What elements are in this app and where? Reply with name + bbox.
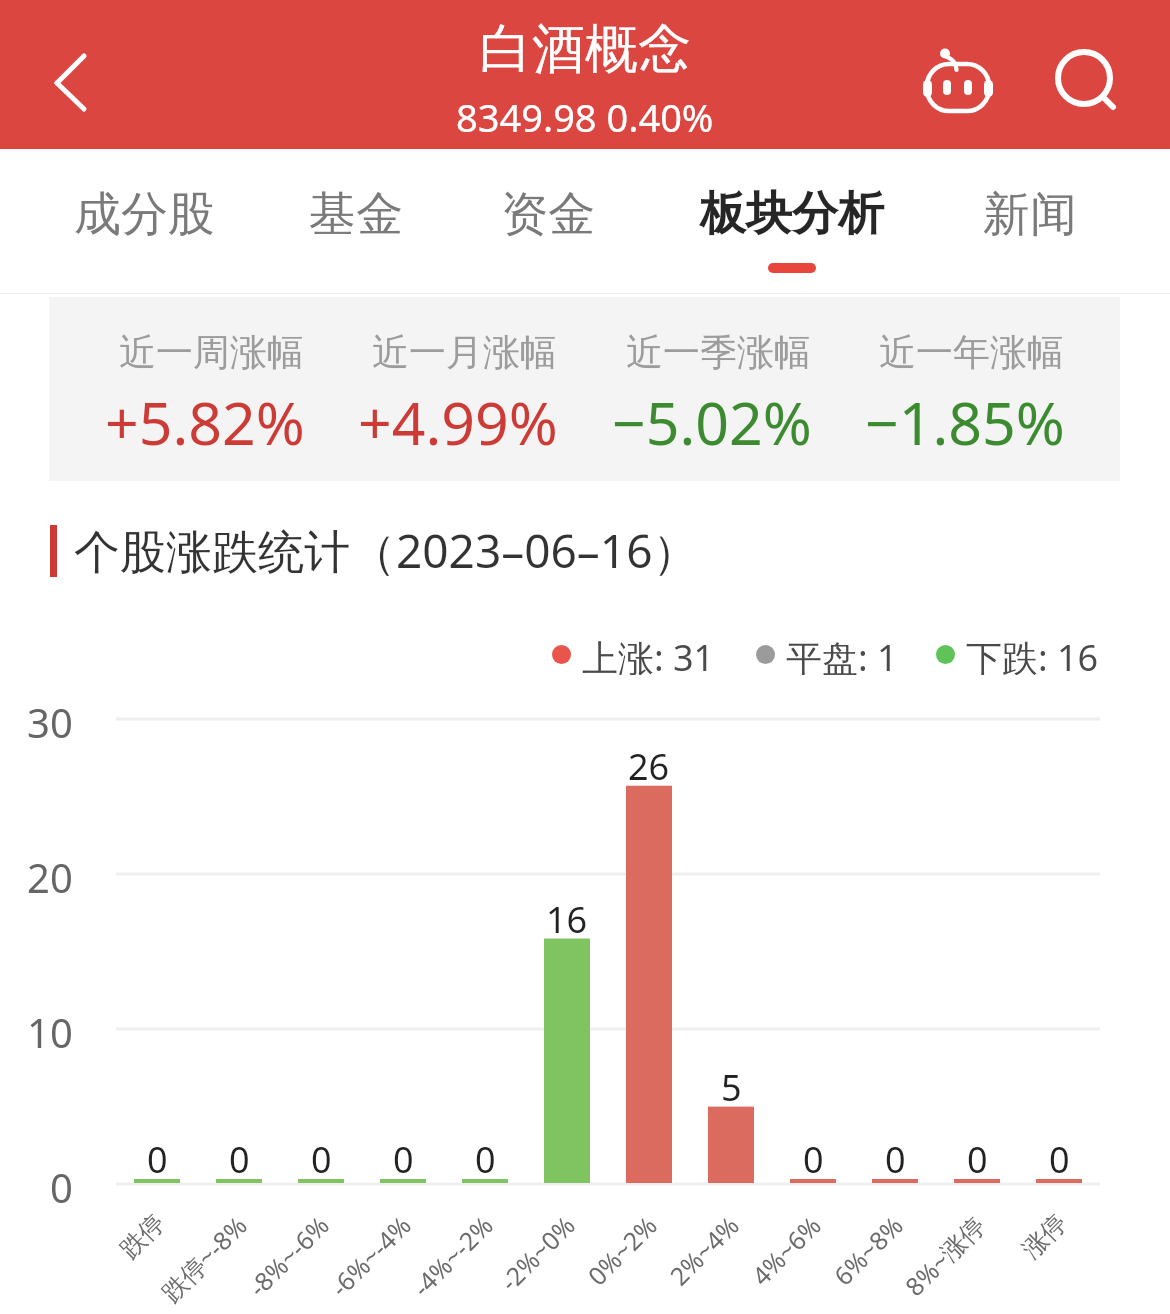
staticText: 资金 <box>501 185 595 244</box>
staticText: 30 <box>27 695 73 749</box>
button[interactable]: 新闻 <box>900 149 1160 294</box>
staticText: 涨停 <box>1016 1207 1073 1265</box>
button[interactable]: 上涨: 31 <box>552 633 715 675</box>
button[interactable]: 近一年涨幅 <box>841 297 1101 481</box>
staticText: −1.85% <box>865 382 1065 462</box>
staticText: 个股涨跌统计（2023–06–16） <box>74 519 699 582</box>
staticText: 0 <box>967 1135 988 1175</box>
staticText: +4.99% <box>358 382 558 462</box>
staticText: -6%~-4% <box>323 1208 418 1303</box>
staticText: 16 <box>546 895 588 935</box>
staticText: -2%~0% <box>492 1208 582 1298</box>
staticText: 板块分析 <box>700 185 884 243</box>
staticText: 近一季涨幅 <box>626 329 811 376</box>
staticText: 跌停~-8% <box>154 1208 254 1308</box>
staticText: 6%~8% <box>826 1208 910 1292</box>
staticText: 白酒概念 <box>479 16 691 83</box>
staticText: 2%~4% <box>662 1208 746 1292</box>
staticText: 成分股 <box>74 185 215 244</box>
button[interactable]: 近一月涨幅 <box>334 297 594 481</box>
staticText: 近一月涨幅 <box>372 329 557 376</box>
staticText: 0 <box>50 1160 73 1214</box>
staticText: 20 <box>27 850 73 904</box>
staticText: 8%~涨停 <box>897 1208 992 1303</box>
staticText: 10 <box>27 1005 73 1059</box>
staticText: 5 <box>721 1063 742 1103</box>
staticText: 0 <box>885 1135 906 1175</box>
staticText: 下跌: 16 <box>966 633 1099 675</box>
button[interactable]: Search <box>1039 33 1131 125</box>
staticText: 平盘: 1 <box>786 633 898 675</box>
staticText: 0 <box>803 1135 824 1175</box>
staticText: 近一周涨幅 <box>119 329 304 376</box>
staticText: −5.02% <box>612 382 812 462</box>
staticText: 新闻 <box>983 185 1077 244</box>
button[interactable]: 板块分析 <box>662 149 922 294</box>
staticText: 0 <box>311 1135 332 1175</box>
button[interactable]: 近一周涨幅 <box>81 297 341 481</box>
button[interactable]: 下跌: 16 <box>936 633 1099 675</box>
staticText: 基金 <box>309 185 403 244</box>
button[interactable]: 平盘: 1 <box>756 633 898 675</box>
button[interactable]: 资金 <box>418 149 678 294</box>
staticText: -4%~-2% <box>405 1208 500 1303</box>
staticText: 0 <box>393 1135 414 1175</box>
staticText: 0 <box>1049 1135 1070 1175</box>
staticText: 0%~2% <box>580 1208 664 1292</box>
button[interactable]: AI assistant <box>912 34 1004 126</box>
staticText: 上涨: 31 <box>582 633 715 675</box>
button[interactable]: Back <box>24 29 116 121</box>
staticText: 0 <box>475 1135 496 1175</box>
staticText: 0 <box>229 1135 250 1175</box>
staticText: 4%~6% <box>744 1208 828 1292</box>
staticText: 8349.98 0.40% <box>456 91 714 143</box>
staticText: +5.82% <box>105 382 305 462</box>
button[interactable]: 成分股 <box>14 149 274 294</box>
staticText: 近一年涨幅 <box>879 329 1064 376</box>
staticText: -8%~-6% <box>241 1208 336 1303</box>
button[interactable]: 近一季涨幅 <box>588 297 848 481</box>
button[interactable]: 基金 <box>226 149 486 294</box>
staticText: 26 <box>628 742 670 782</box>
staticText: 跌停 <box>114 1207 171 1265</box>
staticText: 0 <box>147 1135 168 1175</box>
